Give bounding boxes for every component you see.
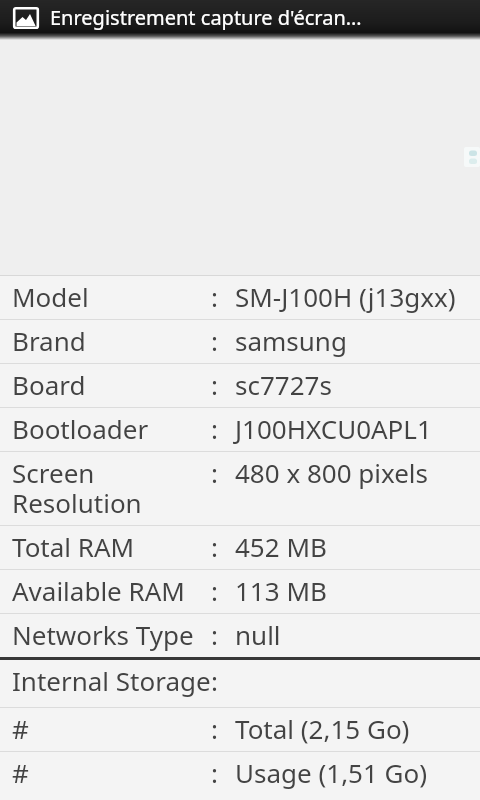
staticText: sc7727s [235,367,480,402]
button[interactable]: Networks Type [0,614,480,657]
staticText: : [211,411,235,446]
staticText: Model [12,279,211,314]
staticText: J100HXCU0APL1 [235,411,480,446]
staticText: Total (2,15 Go) [235,711,480,746]
button[interactable]: Internal Storage [0,660,480,707]
staticText: Networks Type [12,617,211,652]
staticText: : [211,755,235,790]
staticText: : [211,663,235,698]
staticText: : [211,367,235,402]
button[interactable]: Bootloader [0,408,480,451]
button[interactable]: Screen Resolution [0,452,480,525]
staticText: # [12,711,211,746]
staticText: Board [12,367,211,402]
staticText: Usage (1,51 Go) [235,755,480,790]
staticText: 452 MB [235,529,480,564]
staticText: Total RAM [12,529,211,564]
button[interactable]: Model [0,276,480,319]
button[interactable]: # [0,708,480,751]
staticText: : [211,323,235,358]
staticText: : [211,529,235,564]
staticText: samsung [235,323,480,358]
staticText: SM-J100H (j13gxx) [235,279,480,314]
button[interactable]: Board [0,364,480,407]
button[interactable]: Total RAM [0,526,480,569]
button[interactable]: Enregistrement capture d'écran… [0,0,480,40]
staticText: : [211,455,235,490]
staticText: Enregistrement capture d'écran… [50,4,362,31]
staticText: : [211,711,235,746]
staticText: : [211,279,235,314]
staticText: : [211,573,235,608]
staticText: Available RAM [12,573,211,608]
staticText: null [235,617,480,652]
staticText: Internal Storage [12,663,211,698]
button[interactable]: # [0,752,480,795]
button[interactable]: Available RAM [0,570,480,613]
staticText: Brand [12,323,211,358]
staticText: Screen Resolution [12,455,211,520]
staticText: # [12,755,211,790]
staticText: 113 MB [235,573,480,608]
staticText: Bootloader [12,411,211,446]
staticText: 480 x 800 pixels [235,455,480,490]
button[interactable]: Brand [0,320,480,363]
staticText: : [211,617,235,652]
